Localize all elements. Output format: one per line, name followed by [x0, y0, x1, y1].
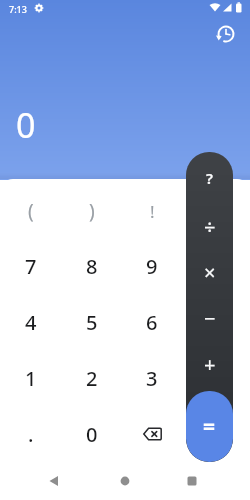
- staticText: !: [150, 200, 155, 223]
- staticText: 5: [86, 309, 98, 336]
- staticText: 2: [86, 365, 98, 392]
- staticText: +: [204, 351, 216, 378]
- button[interactable]: .: [3, 408, 59, 460]
- button[interactable]: 5: [64, 296, 120, 348]
- staticText: ?: [206, 168, 213, 188]
- staticText: .: [28, 421, 34, 448]
- button[interactable]: ×: [186, 250, 233, 294]
- staticText: 0: [16, 102, 36, 146]
- staticText: −: [204, 305, 216, 332]
- staticText: ): [89, 198, 95, 224]
- staticText: 9: [146, 253, 158, 280]
- staticText: =: [203, 412, 216, 441]
- button[interactable]: ): [64, 185, 120, 237]
- staticText: ×: [204, 259, 216, 286]
- button[interactable]: −: [186, 296, 233, 340]
- button[interactable]: [176, 466, 208, 496]
- button[interactable]: 8: [64, 240, 120, 292]
- staticText: 7: [25, 253, 37, 280]
- button[interactable]: 0: [64, 408, 120, 460]
- button[interactable]: [38, 466, 70, 496]
- staticText: 0: [86, 421, 98, 448]
- staticText: 7:13: [9, 3, 27, 15]
- button[interactable]: 9: [124, 240, 180, 292]
- staticText: 3: [146, 365, 158, 392]
- button[interactable]: [124, 408, 180, 460]
- button[interactable]: !: [124, 185, 180, 237]
- button[interactable]: +: [186, 342, 233, 386]
- button[interactable]: 2: [64, 352, 120, 404]
- button[interactable]: =: [186, 391, 233, 462]
- button[interactable]: ÷: [186, 204, 233, 248]
- button[interactable]: [109, 466, 141, 496]
- button[interactable]: 7: [3, 240, 59, 292]
- staticText: 8: [86, 253, 98, 280]
- staticText: (: [28, 198, 34, 224]
- button[interactable]: ?: [186, 156, 233, 200]
- button[interactable]: 4: [3, 296, 59, 348]
- staticText: ÷: [204, 213, 216, 240]
- button[interactable]: 1: [3, 352, 59, 404]
- staticText: 4: [25, 309, 37, 336]
- button[interactable]: 6: [124, 296, 180, 348]
- staticText: 1: [25, 365, 37, 392]
- staticText: 6: [146, 309, 158, 336]
- button[interactable]: (: [3, 185, 59, 237]
- button[interactable]: [215, 23, 237, 45]
- button[interactable]: 3: [124, 352, 180, 404]
